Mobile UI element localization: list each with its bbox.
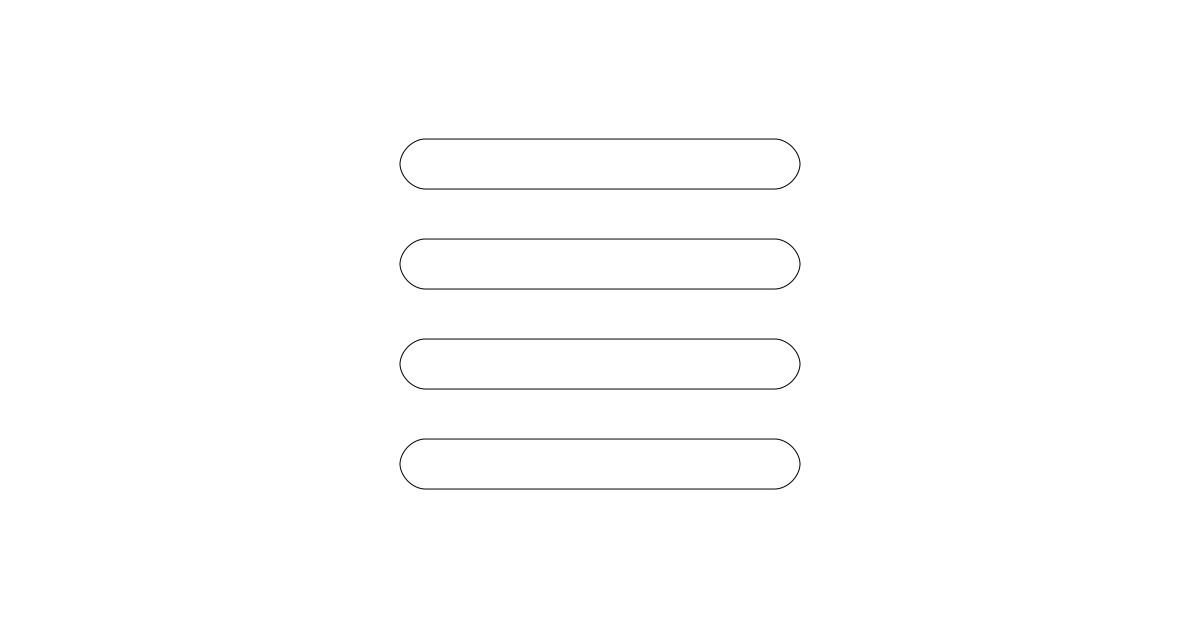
button[interactable]: Option 4 — [400, 439, 800, 489]
button[interactable]: Option 1 — [400, 139, 800, 189]
button[interactable]: Option 2 — [400, 239, 800, 289]
button[interactable]: Option 3 — [400, 339, 800, 389]
